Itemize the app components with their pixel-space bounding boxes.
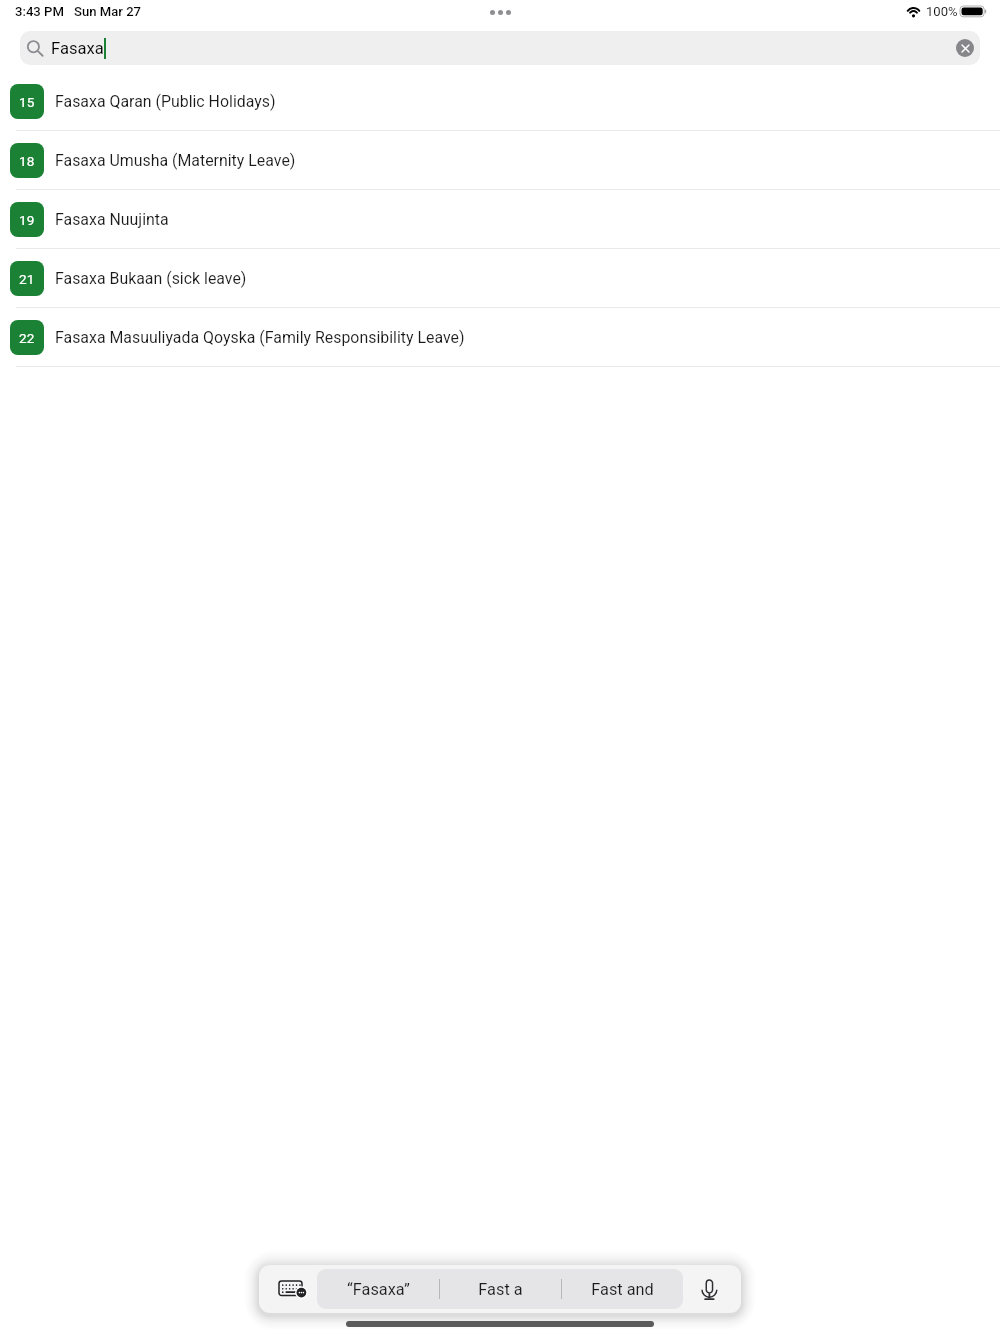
staticText: Fasaxa [51, 39, 104, 58]
staticText: Fasaxa Bukaan (sick leave) [55, 269, 247, 288]
button[interactable]: Dictate [683, 1265, 741, 1313]
staticText: 100% [926, 4, 958, 19]
staticText: 22 [19, 330, 35, 346]
button[interactable]: 21 [0, 249, 1000, 308]
button[interactable]: 15 [0, 72, 1000, 131]
staticText: 15 [19, 94, 35, 110]
staticText: 21 [19, 271, 35, 287]
staticText: 19 [19, 212, 35, 228]
button[interactable]: Fasaxa [20, 31, 980, 65]
staticText: 18 [19, 153, 35, 169]
staticText: Fasaxa Nuujinta [55, 210, 169, 229]
staticText: Sun Mar 27 [74, 4, 142, 19]
staticText: 3:43 PM [15, 4, 64, 19]
button[interactable]: Clear text [956, 39, 974, 57]
staticText: Fast a [478, 1280, 523, 1299]
staticText: Fasaxa Masuuliyada Qoyska (Family Respon… [55, 328, 465, 347]
staticText: Fasaxa Umusha (Maternity Leave) [55, 151, 296, 170]
button[interactable]: Fast a [440, 1269, 561, 1309]
button[interactable]: 18 [0, 131, 1000, 190]
staticText: Fast and [591, 1280, 654, 1299]
button[interactable]: Fast and [562, 1269, 683, 1309]
button[interactable]: Show keyboard [259, 1265, 317, 1313]
button[interactable]: “Fasaxa” [317, 1269, 439, 1309]
staticText: “Fasaxa” [347, 1280, 410, 1299]
button[interactable]: 22 [0, 308, 1000, 367]
staticText: Fasaxa Qaran (Public Holidays) [55, 92, 276, 111]
button[interactable]: 19 [0, 190, 1000, 249]
